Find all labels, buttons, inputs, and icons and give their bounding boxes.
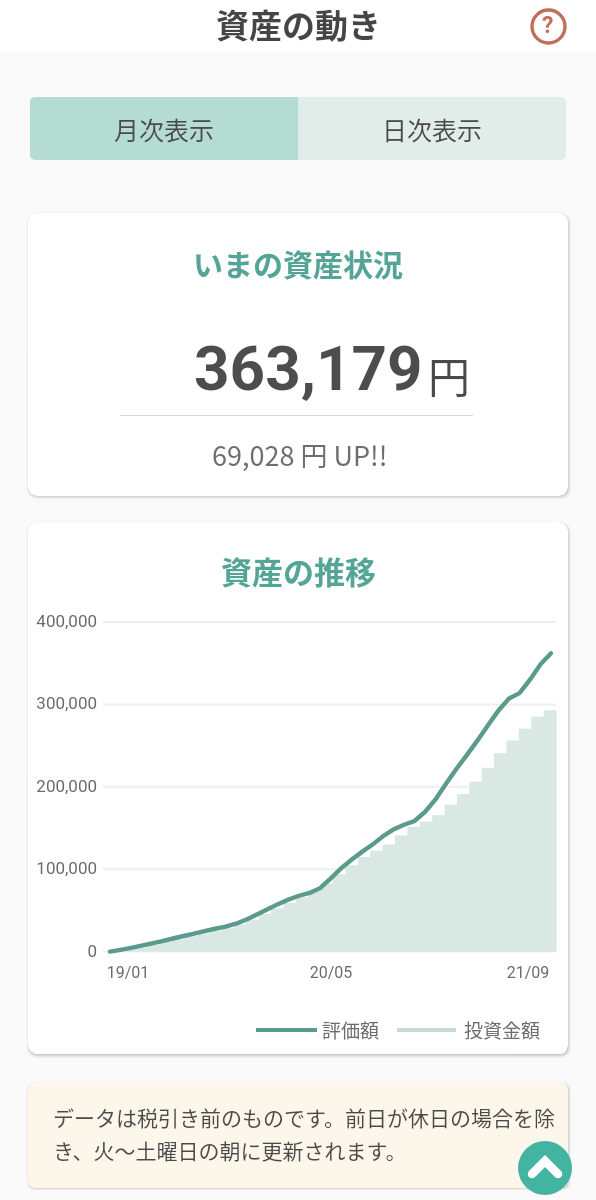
button[interactable]: Scroll to top xyxy=(518,1141,572,1195)
staticText: 21/09 xyxy=(478,963,568,982)
staticText: 投資金額 xyxy=(464,1016,541,1044)
button[interactable]: 日次表示 xyxy=(298,97,566,160)
staticText: 200,000 xyxy=(28,776,97,796)
staticText: 363,179 xyxy=(194,332,423,405)
staticText: 資産の推移 xyxy=(221,548,376,593)
staticText: 400,000 xyxy=(28,611,97,631)
staticText: データは税引き前のものです。前日が休日の場合を除き、火〜土曜日の朝に更新されます… xyxy=(53,1102,564,1165)
button[interactable]: 月次表示 xyxy=(30,97,298,160)
staticText: ? xyxy=(542,12,554,39)
staticText: 日次表示 xyxy=(382,111,483,147)
staticText: 19/01 xyxy=(78,963,178,982)
staticText: いまの資産状況 xyxy=(193,241,403,284)
staticText: 円 xyxy=(428,344,471,405)
staticText: 300,000 xyxy=(28,693,97,713)
staticText: 月次表示 xyxy=(114,111,215,147)
staticText: 評価額 xyxy=(322,1016,380,1044)
staticText: 0 xyxy=(28,941,97,961)
button[interactable]: Help xyxy=(528,6,568,46)
button[interactable]: いまの資産状況 xyxy=(28,213,568,496)
staticText: 69,028 円 UP!! xyxy=(212,435,388,474)
staticText: 資産の動き xyxy=(216,0,381,48)
staticText: 100,000 xyxy=(28,858,97,878)
staticText: 20/05 xyxy=(281,963,381,982)
